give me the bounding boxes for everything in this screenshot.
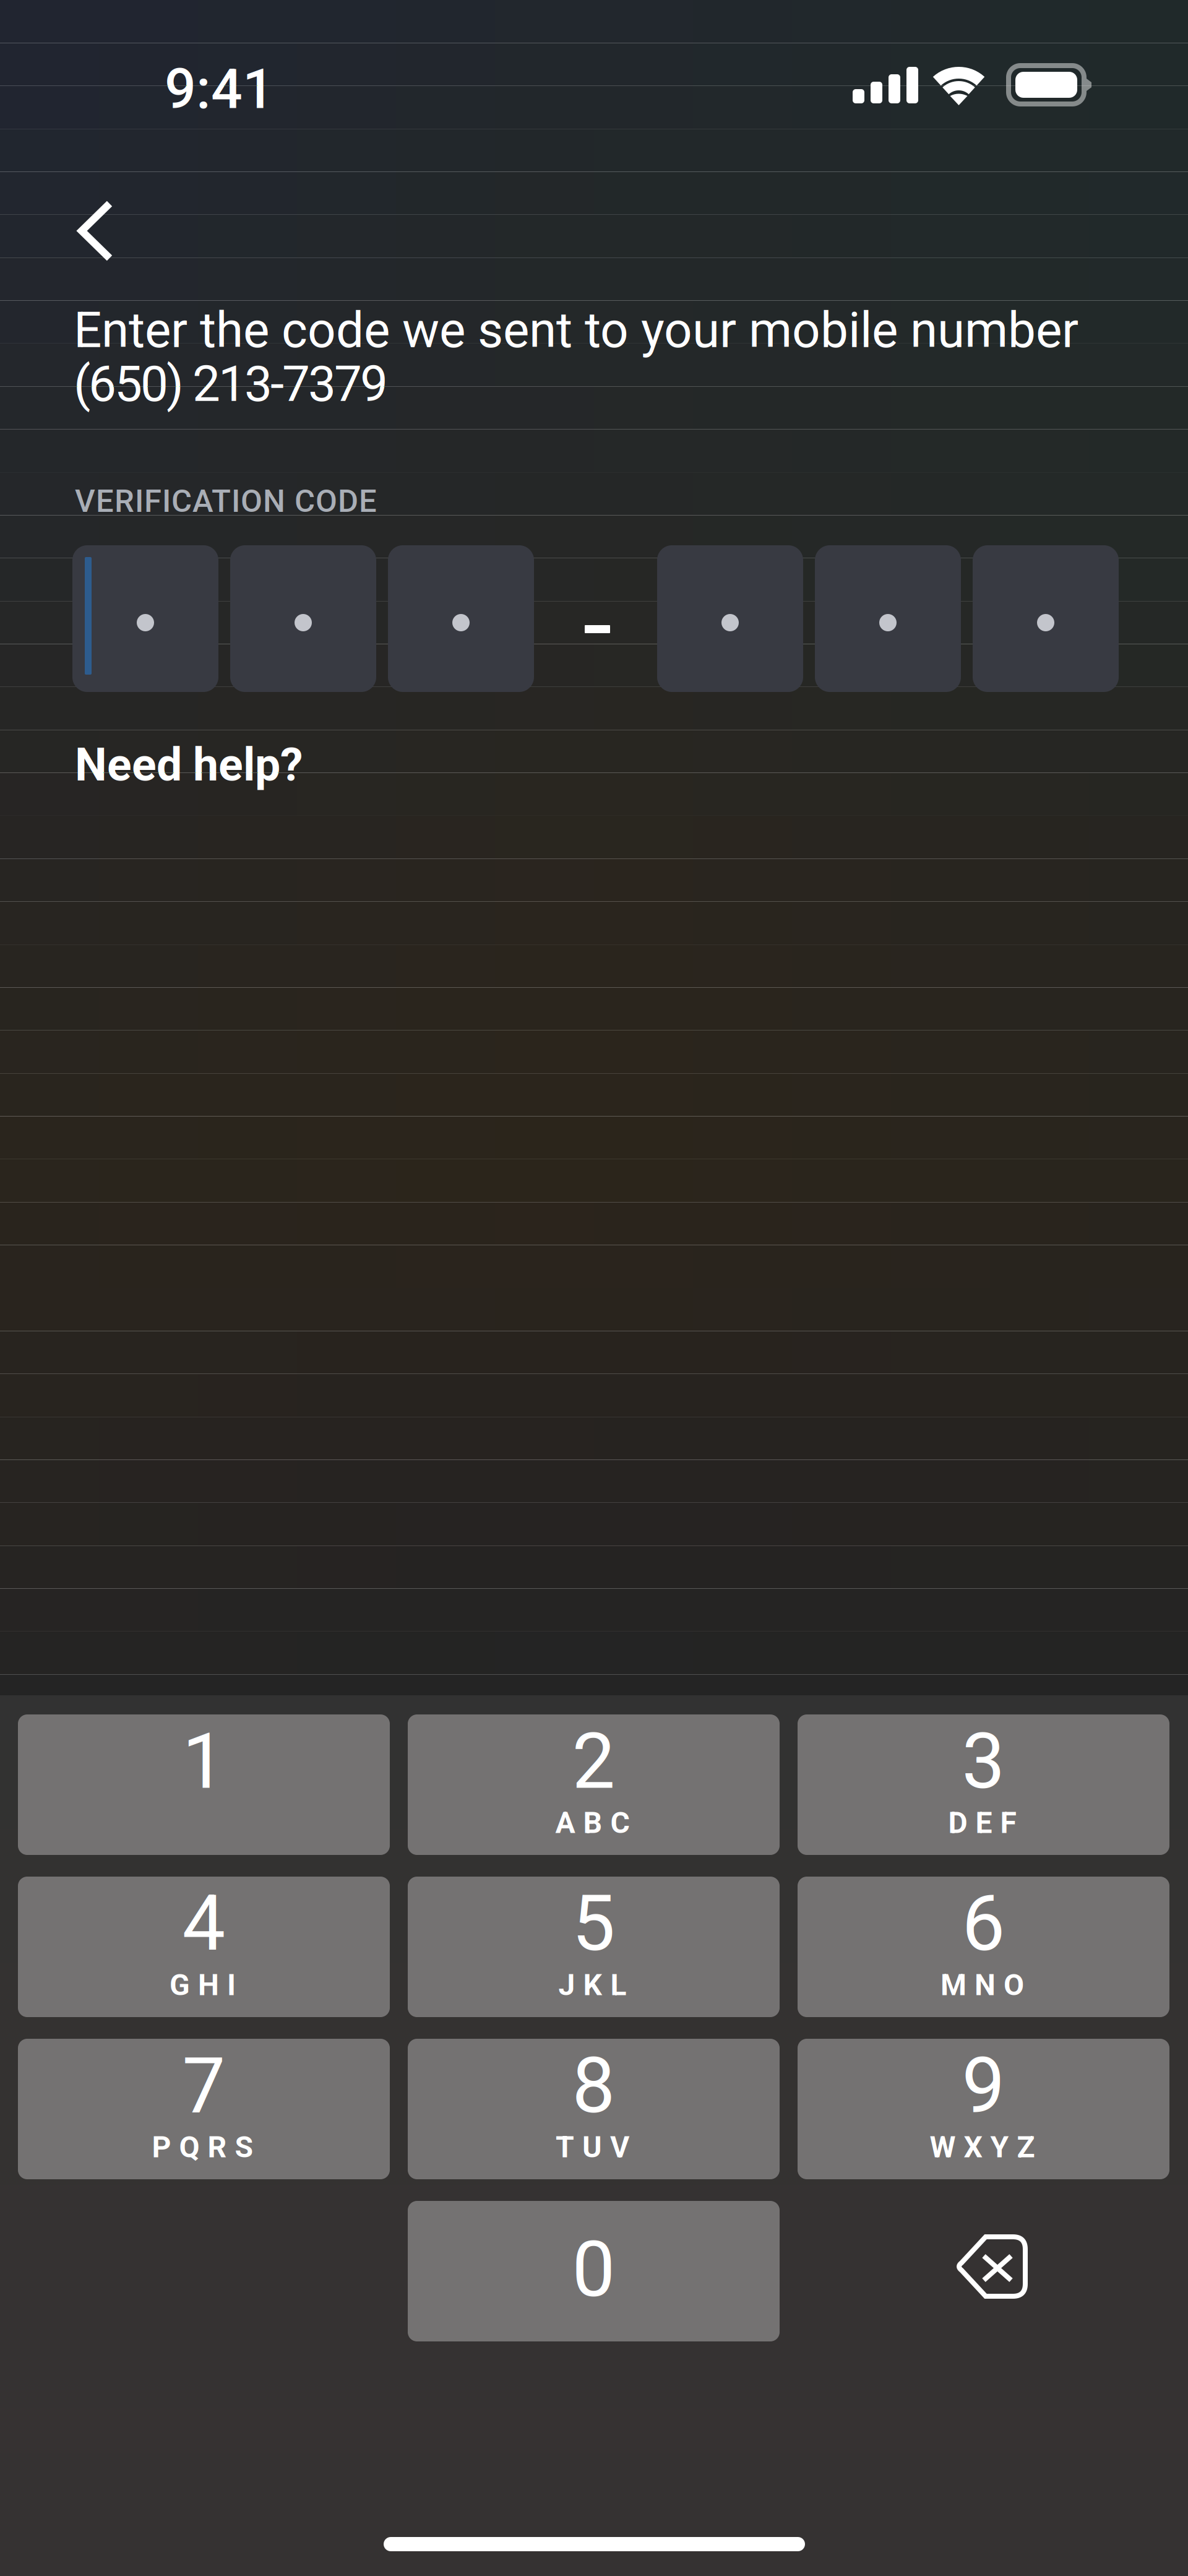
staticText: 9:41 — [165, 57, 274, 122]
button[interactable]: Code digit — [657, 545, 803, 692]
staticText: Need help? — [75, 738, 303, 792]
staticText: 8 — [572, 2041, 615, 2131]
button[interactable]: Code digit — [388, 545, 534, 692]
staticText: 6 — [962, 1879, 1005, 1969]
staticText: 1 — [182, 1716, 226, 1806]
staticText: 2 — [572, 1716, 615, 1806]
staticText: Enter the code we sent to your mobile nu… — [74, 301, 1078, 359]
staticText: ABC — [555, 1805, 630, 1840]
button[interactable]: Delete — [798, 2201, 1169, 2341]
button[interactable]: Back — [61, 186, 166, 292]
button[interactable]: 8 — [408, 2039, 780, 2179]
button[interactable]: 7 — [18, 2039, 390, 2179]
staticText: 4 — [182, 1879, 226, 1969]
staticText: TUV — [556, 2130, 629, 2164]
staticText: WXYZ — [930, 2130, 1035, 2164]
button[interactable]: 1 — [18, 1714, 390, 1855]
button[interactable]: 9 — [798, 2039, 1169, 2179]
button[interactable]: Code digit — [230, 545, 376, 692]
button[interactable]: 6 — [798, 1877, 1169, 2017]
button[interactable]: Code digit — [72, 545, 218, 692]
staticText: 5 — [572, 1879, 615, 1969]
staticText: JKL — [558, 1968, 626, 2002]
button[interactable]: Need help? — [75, 734, 384, 796]
staticText: 0 — [572, 2225, 615, 2315]
button[interactable]: 5 — [408, 1877, 780, 2017]
button[interactable]: 3 — [798, 1714, 1169, 1855]
staticText: MNO — [940, 1968, 1024, 2002]
staticText: GHI — [170, 1968, 236, 2002]
button[interactable]: Code digit — [815, 545, 961, 692]
staticText: DEF — [948, 1805, 1016, 1840]
staticText: (650) 213-7379 — [74, 355, 388, 413]
button[interactable]: 0 — [408, 2201, 780, 2341]
staticText: 7 — [182, 2041, 226, 2131]
staticText: PQRS — [152, 2130, 253, 2164]
staticText: 9 — [962, 2041, 1005, 2131]
button[interactable]: Code digit — [973, 545, 1119, 692]
staticText: VERIFICATION CODE — [75, 483, 377, 520]
button[interactable]: 2 — [408, 1714, 780, 1855]
button[interactable]: 4 — [18, 1877, 390, 2017]
staticText: 3 — [962, 1716, 1005, 1806]
